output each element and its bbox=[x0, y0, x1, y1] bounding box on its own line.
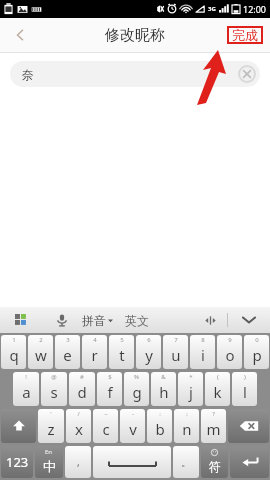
staticText: 拼音 bbox=[82, 313, 106, 328]
button[interactable]: / bbox=[66, 409, 91, 443]
staticText: ~ bbox=[104, 410, 108, 418]
staticText: j bbox=[189, 382, 193, 402]
button[interactable]: ? bbox=[201, 409, 226, 443]
staticText: h bbox=[159, 382, 169, 402]
button[interactable]: 3 bbox=[55, 335, 80, 369]
button[interactable]: 拼音 bbox=[82, 307, 113, 333]
button[interactable]: # bbox=[69, 372, 95, 406]
staticText: * bbox=[189, 373, 193, 381]
staticText: % bbox=[134, 373, 139, 381]
staticText: a bbox=[22, 382, 31, 402]
staticText: e bbox=[63, 345, 72, 365]
staticText: w bbox=[35, 345, 47, 365]
button[interactable]: Clear text bbox=[238, 65, 256, 83]
staticText: c bbox=[102, 419, 110, 439]
button[interactable]: ! bbox=[13, 372, 39, 406]
staticText: ' bbox=[50, 410, 52, 418]
button[interactable]: Shift bbox=[1, 409, 36, 443]
staticText: 2 bbox=[39, 336, 43, 344]
staticText: 奈 bbox=[22, 67, 34, 82]
button[interactable]: , bbox=[65, 446, 91, 478]
button[interactable]: % bbox=[124, 372, 149, 406]
button[interactable]: 奈 bbox=[10, 61, 260, 87]
button[interactable]: & bbox=[151, 372, 176, 406]
button[interactable]: ) bbox=[232, 372, 257, 406]
staticText: - bbox=[132, 410, 134, 418]
button[interactable]: 。 bbox=[173, 446, 199, 478]
button[interactable]: 4 bbox=[82, 335, 107, 369]
button[interactable]: 6 bbox=[136, 335, 161, 369]
staticText: ( bbox=[217, 373, 219, 381]
staticText: b bbox=[155, 419, 165, 439]
button[interactable]: Hide keyboard bbox=[228, 307, 270, 333]
staticText: l bbox=[243, 382, 247, 402]
button[interactable]: Space bbox=[93, 446, 171, 478]
staticText: 5 bbox=[120, 336, 124, 344]
button[interactable]: Resize keyboard bbox=[193, 307, 227, 333]
button[interactable]: 5 bbox=[109, 335, 134, 369]
staticText: ) bbox=[244, 373, 246, 381]
button[interactable]: 英文 bbox=[125, 307, 149, 333]
staticText: 3 bbox=[66, 336, 70, 344]
button[interactable]: 2 bbox=[28, 335, 53, 369]
button[interactable]: 完成 bbox=[232, 27, 258, 43]
button[interactable]: 符 bbox=[201, 446, 228, 478]
staticText: ? bbox=[212, 410, 215, 418]
button[interactable]: Enter bbox=[230, 446, 269, 478]
staticText: z bbox=[47, 419, 55, 439]
staticText: k bbox=[213, 382, 222, 402]
staticText: q bbox=[9, 345, 19, 365]
button[interactable]: ( bbox=[205, 372, 230, 406]
staticText: o bbox=[225, 345, 235, 365]
button[interactable]: ' bbox=[38, 409, 64, 443]
staticText: 中 bbox=[43, 458, 56, 474]
staticText: 123 bbox=[6, 453, 29, 471]
staticText: 4 bbox=[93, 336, 97, 344]
button[interactable]: ; bbox=[174, 409, 199, 443]
staticText: t bbox=[119, 345, 125, 365]
button[interactable]: 1 bbox=[1, 335, 26, 369]
staticText: , bbox=[77, 455, 80, 469]
button[interactable]: ~ bbox=[93, 409, 118, 443]
button[interactable]: 0 bbox=[244, 335, 269, 369]
button[interactable]: 123 bbox=[1, 446, 33, 478]
staticText: 3G bbox=[208, 5, 216, 13]
staticText: # bbox=[80, 373, 84, 381]
button[interactable]: : bbox=[147, 409, 172, 443]
button[interactable]: 9 bbox=[217, 335, 242, 369]
staticText: r bbox=[91, 345, 98, 365]
staticText: 9 bbox=[228, 336, 232, 344]
button[interactable]: Voice input bbox=[42, 307, 82, 333]
staticText: En bbox=[45, 448, 53, 456]
staticText: 符 bbox=[209, 459, 221, 474]
button[interactable]: $ bbox=[97, 372, 122, 406]
staticText: ! bbox=[25, 373, 27, 381]
staticText: x bbox=[75, 419, 83, 439]
staticText: n bbox=[182, 419, 192, 439]
staticText: 修改昵称 bbox=[105, 26, 165, 45]
button[interactable]: Back bbox=[0, 18, 40, 52]
button[interactable]: - bbox=[120, 409, 145, 443]
staticText: m bbox=[206, 419, 221, 439]
staticText: @ bbox=[51, 373, 57, 381]
staticText: i bbox=[201, 345, 205, 365]
button[interactable]: * bbox=[178, 372, 203, 406]
staticText: v bbox=[129, 419, 137, 439]
staticText: 。 bbox=[181, 456, 191, 469]
button[interactable]: Keyboard layouts bbox=[0, 307, 42, 333]
staticText: 7 bbox=[174, 336, 178, 344]
staticText: $ bbox=[108, 373, 112, 381]
staticText: p bbox=[252, 345, 262, 365]
staticText: u bbox=[171, 345, 181, 365]
button[interactable]: En bbox=[35, 446, 63, 478]
button[interactable]: Backspace bbox=[228, 409, 269, 443]
staticText: & bbox=[161, 373, 166, 381]
staticText: 8 bbox=[201, 336, 205, 344]
staticText: / bbox=[77, 410, 80, 418]
button[interactable]: @ bbox=[41, 372, 67, 406]
staticText: 英文 bbox=[125, 313, 149, 328]
button[interactable]: 8 bbox=[190, 335, 215, 369]
staticText: 12:00 bbox=[243, 3, 267, 15]
button[interactable]: 7 bbox=[163, 335, 188, 369]
staticText: 1 bbox=[12, 336, 16, 344]
